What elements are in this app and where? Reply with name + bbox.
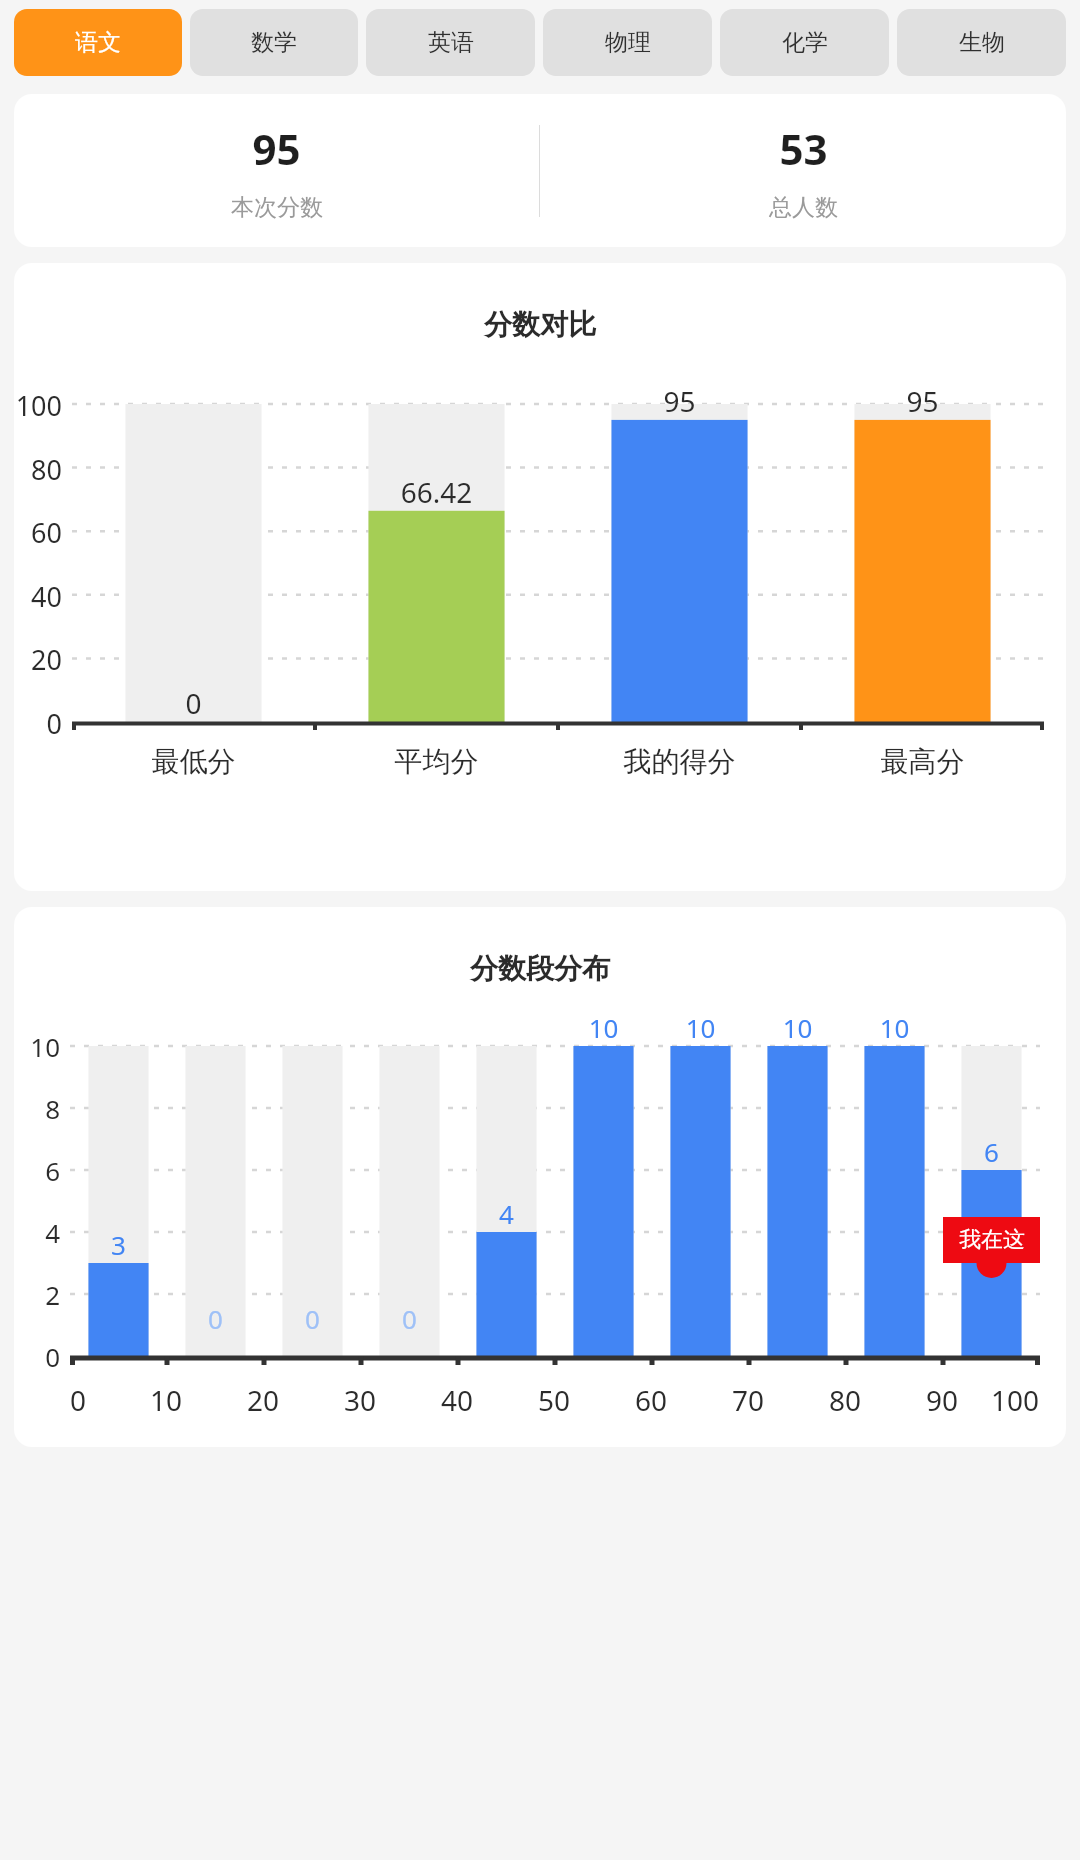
staticText: 物理 [605,28,651,57]
staticText: 10 [652,1010,749,1045]
staticText: 60 [635,1381,668,1419]
staticText: 化学 [782,28,828,57]
staticText: 10 [150,1381,183,1419]
staticText: 0 [72,684,315,722]
staticText: 10 [14,1029,60,1064]
staticText: 0 [70,1381,87,1419]
staticText: 70 [732,1381,765,1419]
staticText: 40 [441,1381,474,1419]
staticText: 10 [749,1010,846,1045]
staticText: 0 [14,705,62,742]
staticText: 6 [14,1153,60,1188]
staticText: 分数段分布 [14,951,1066,986]
staticText: 30 [344,1381,377,1419]
staticText: 95 [252,120,301,177]
staticText: 我在这 [959,1226,1025,1254]
staticText: 6 [943,1134,1040,1169]
staticText: 53 [779,120,828,177]
staticText: 0 [167,1301,264,1336]
staticText: 0 [264,1301,361,1336]
staticText: 3 [70,1227,167,1262]
button[interactable]: 我在这 [943,1217,1040,1263]
button[interactable]: 英语 [366,9,535,76]
staticText: 我的得分 [558,744,801,779]
staticText: 80 [14,451,62,488]
staticText: 总人数 [769,193,838,222]
staticText: 数学 [251,28,297,57]
staticText: 10 [846,1010,943,1045]
button[interactable]: 53 [540,94,1066,247]
staticText: 66.42 [315,473,558,511]
staticText: 4 [14,1215,60,1250]
staticText: 分数对比 [14,307,1066,342]
button[interactable]: 95 [14,94,539,247]
button[interactable]: 生物 [897,9,1066,76]
staticText: 80 [829,1381,862,1419]
staticText: 平均分 [315,744,558,779]
button[interactable]: 物理 [543,9,712,76]
staticText: 语文 [75,28,121,57]
staticText: 60 [14,514,62,551]
staticText: 0 [361,1301,458,1336]
staticText: 90 [926,1381,959,1419]
staticText: 8 [14,1091,60,1126]
button[interactable]: 化学 [720,9,889,76]
staticText: 95 [558,382,801,420]
staticText: 生物 [959,28,1005,57]
staticText: 95 [801,382,1044,420]
staticText: 0 [14,1339,60,1374]
staticText: 4 [458,1196,555,1231]
staticText: 100 [991,1381,1040,1419]
staticText: 最低分 [72,744,315,779]
staticText: 最高分 [801,744,1044,779]
staticText: 英语 [428,28,474,57]
staticText: 20 [247,1381,280,1419]
staticText: 50 [538,1381,571,1419]
staticText: 100 [14,387,62,424]
staticText: 20 [14,641,62,678]
staticText: 10 [555,1010,652,1045]
staticText: 2 [14,1277,60,1312]
button[interactable]: 数学 [190,9,358,76]
staticText: 40 [14,578,62,615]
button[interactable]: 语文 [14,9,182,76]
staticText: 本次分数 [231,193,323,222]
